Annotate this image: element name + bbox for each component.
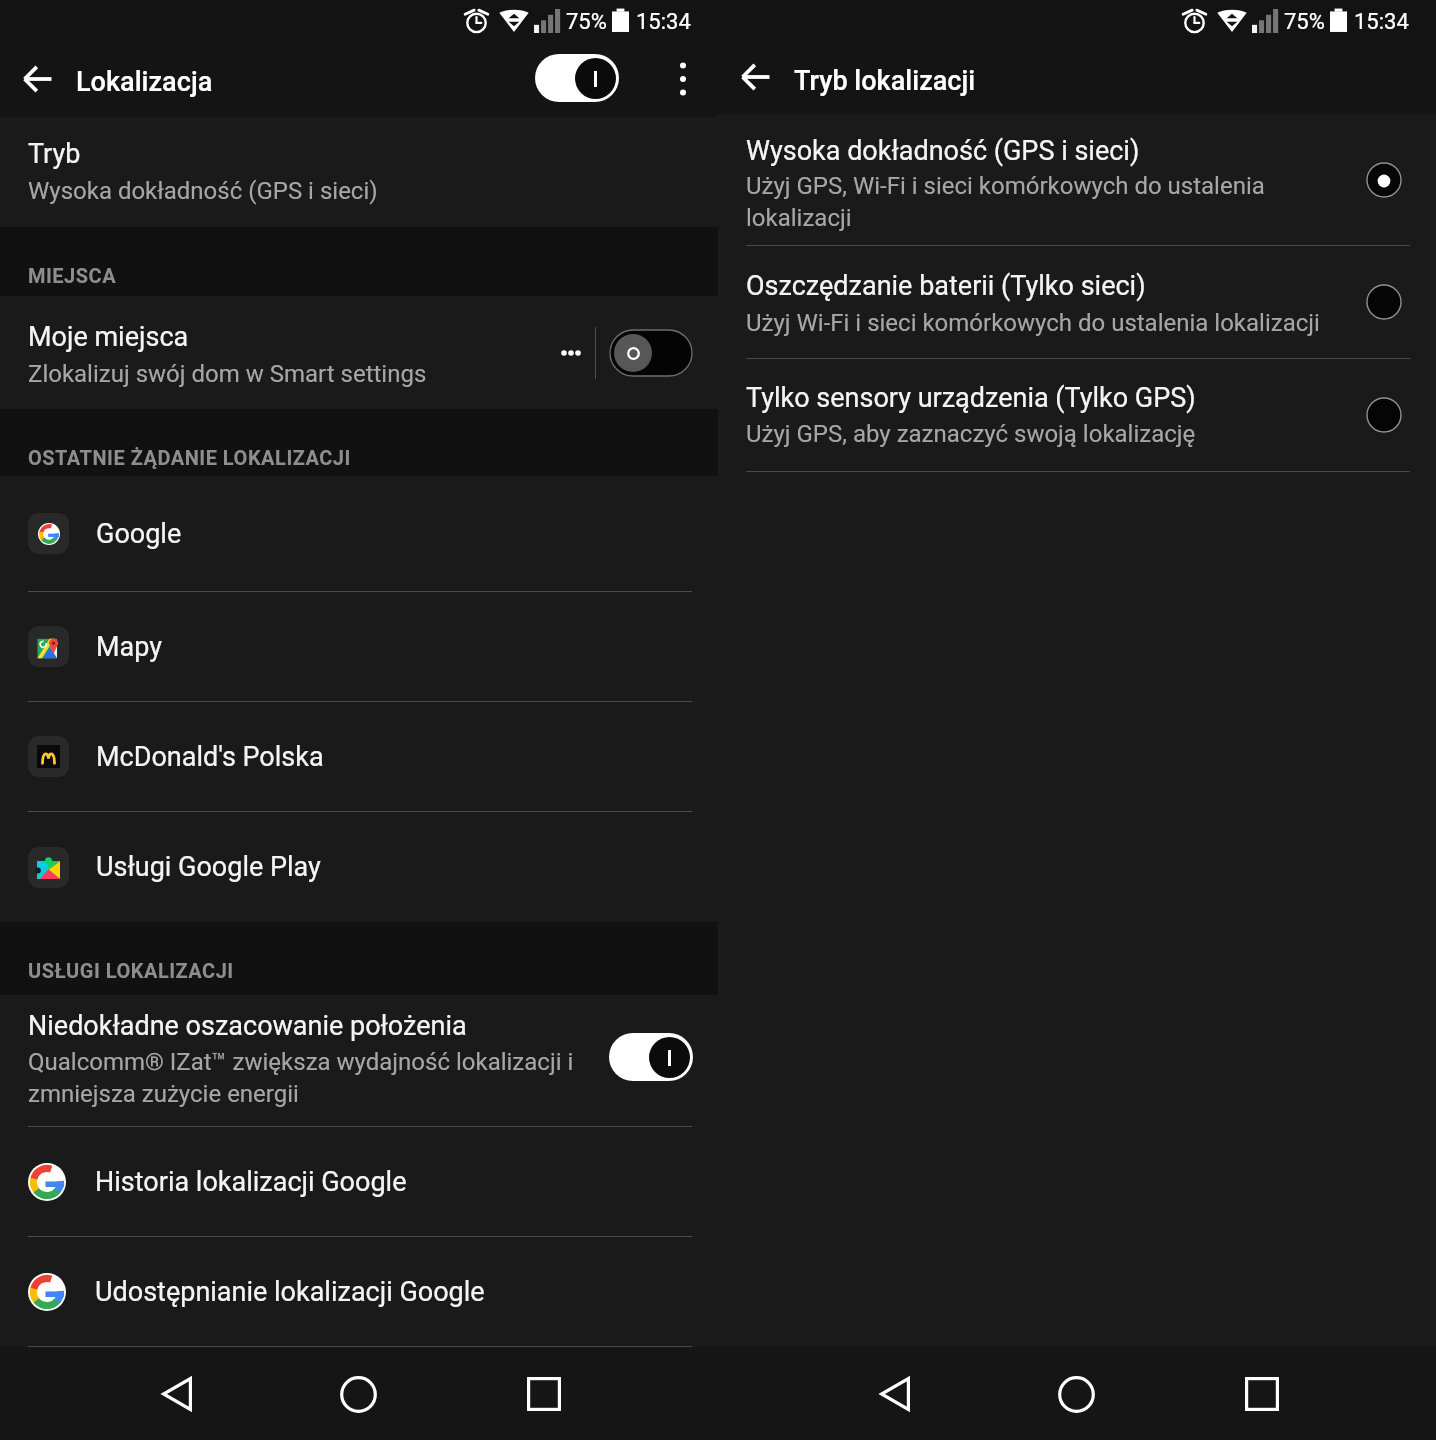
button[interactable]: Recent apps [1225, 1357, 1299, 1431]
button[interactable]: Tylko sensory urządzenia (Tylko GPS) [718, 359, 1436, 471]
staticText: Google [96, 518, 182, 550]
button[interactable]: Moje miejsca [0, 296, 718, 409]
staticText: Historia lokalizacji Google [95, 1166, 407, 1198]
staticText: Moje miejsca [28, 321, 189, 353]
staticText: 15:34 [636, 9, 691, 35]
staticText: Wysoka dokładność (GPS i sieci) [746, 135, 1140, 167]
staticText: Użyj GPS, aby zaznaczyć swoją lokalizacj… [746, 420, 1196, 448]
staticText: Użyj GPS, Wi-Fi i sieci komórkowych do u… [746, 172, 1341, 232]
button[interactable]: My places options [548, 325, 594, 381]
staticText: Użyj Wi-Fi i sieci komórkowych do ustale… [746, 309, 1320, 337]
button[interactable]: Recent apps [507, 1357, 581, 1431]
staticText: Mapy [96, 631, 163, 663]
staticText: Wysoka dokładność (GPS i sieci) [28, 177, 378, 205]
button[interactable]: Oszczędzanie baterii (Tylko sieci) [718, 246, 1436, 358]
staticText: Niedokładne oszacowanie położenia [28, 1010, 467, 1042]
staticText: Oszczędzanie baterii (Tylko sieci) [746, 270, 1146, 302]
button[interactable]: Back [140, 1357, 214, 1431]
staticText: McDonald's Polska [96, 741, 324, 773]
staticText: 75% [1284, 9, 1325, 35]
button[interactable]: IZat on/off [609, 1033, 693, 1081]
button[interactable]: Udostępnianie lokalizacji Google [0, 1237, 718, 1346]
button[interactable]: My places on/off [610, 330, 692, 376]
button[interactable]: Oszczędzanie baterii (Tylko sieci) [1366, 284, 1402, 320]
staticText: Usługi Google Play [96, 851, 321, 883]
button[interactable]: Mapy [0, 592, 718, 701]
button[interactable]: Historia lokalizacji Google [0, 1127, 718, 1236]
button[interactable]: More options [658, 48, 708, 110]
button[interactable]: Location on/off [535, 54, 619, 102]
button[interactable]: Google [0, 476, 718, 591]
staticText: 75% [566, 9, 607, 35]
staticText: MIEJSCA [28, 264, 117, 287]
button[interactable]: Home [321, 1357, 395, 1431]
button[interactable]: Home [1039, 1357, 1113, 1431]
button[interactable]: Back [858, 1357, 932, 1431]
button[interactable]: Wysoka dokładność (GPS i sieci) [718, 114, 1436, 245]
staticText: Tylko sensory urządzenia (Tylko GPS) [746, 382, 1196, 414]
staticText: Tryb lokalizacji [794, 65, 976, 97]
button[interactable]: McDonald's Polska [0, 702, 718, 811]
button[interactable]: Wysoka dokładność (GPS i sieci) [1366, 162, 1402, 198]
staticText: Zlokalizuj swój dom w Smart settings [28, 360, 427, 388]
staticText: USŁUGI LOKALIZACJI [28, 959, 234, 982]
button[interactable]: Niedokładne oszacowanie położenia [0, 995, 718, 1126]
staticText: Tryb [28, 138, 81, 170]
button[interactable]: Back [727, 48, 785, 106]
staticText: Qualcomm® IZat™ zwiększa wydajność lokal… [28, 1048, 603, 1108]
button[interactable]: Tylko sensory urządzenia (Tylko GPS) [1366, 397, 1402, 433]
button[interactable]: Usługi Google Play [0, 812, 718, 922]
button[interactable]: Back [9, 50, 67, 108]
staticText: 15:34 [1354, 9, 1409, 35]
button[interactable]: Tryb [0, 117, 718, 227]
staticText: OSTATNIE ŻĄDANIE LOKALIZACJI [28, 446, 351, 469]
staticText: Udostępnianie lokalizacji Google [95, 1276, 485, 1308]
staticText: Lokalizacja [76, 66, 213, 98]
